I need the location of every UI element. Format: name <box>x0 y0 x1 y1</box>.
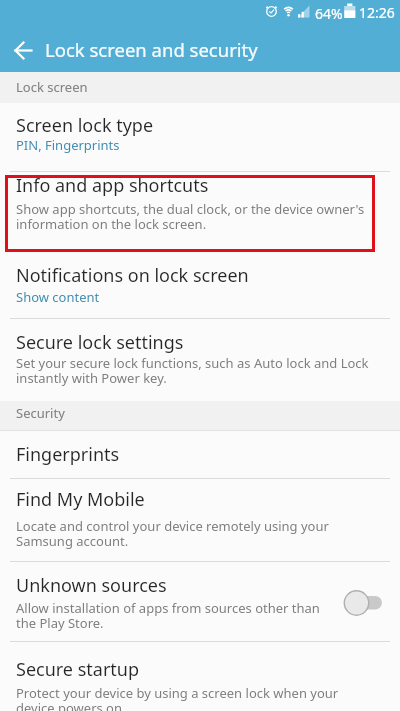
button[interactable]: Secure lock settings <box>0 319 400 401</box>
staticText: Allow installation of apps from sources … <box>16 599 320 632</box>
staticText: Find My Mobile <box>16 487 145 512</box>
staticText: Set your secure lock functions, such as … <box>16 354 369 387</box>
staticText: Fingerprints <box>16 442 120 467</box>
staticText: 12:26 <box>359 3 395 22</box>
staticText: Locate and control your device remotely … <box>16 517 329 550</box>
button[interactable]: Info and app shortcuts <box>0 175 400 252</box>
staticText: Security <box>16 404 65 422</box>
button[interactable]: Find My Mobile <box>0 479 400 561</box>
staticText: Lock screen and security <box>45 37 258 62</box>
staticText: PIN, Fingerprints <box>16 136 120 154</box>
staticText: Lock screen <box>16 78 88 96</box>
button[interactable]: Unknown sources <box>0 562 400 641</box>
staticText: Secure startup <box>16 657 140 682</box>
button[interactable]: Fingerprints <box>0 431 400 478</box>
staticText: Unknown sources <box>16 573 167 598</box>
staticText: Show app shortcuts, the dual clock, or t… <box>16 200 365 233</box>
button[interactable]: Secure startup <box>0 642 400 711</box>
staticText: Screen lock type <box>16 113 154 138</box>
staticText: Secure lock settings <box>16 330 184 355</box>
staticText: Info and app shortcuts <box>16 173 209 198</box>
button[interactable] <box>0 25 47 72</box>
button[interactable]: Notifications on lock screen <box>0 252 400 318</box>
staticText: Notifications on lock screen <box>16 263 249 288</box>
staticText: Show content <box>16 288 100 306</box>
staticText: 64% <box>315 4 343 23</box>
button[interactable]: Screen lock type <box>0 103 400 171</box>
staticText: Protect your device by using a screen lo… <box>16 684 339 711</box>
